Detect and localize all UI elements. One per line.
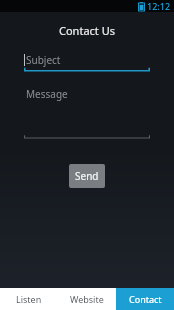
button[interactable]: Message (24, 86, 150, 139)
button[interactable]: Listen (0, 288, 58, 310)
staticText: Listen (16, 293, 42, 305)
button[interactable]: Website (58, 288, 116, 310)
staticText: Send (75, 169, 99, 183)
staticText: Subject (26, 53, 61, 67)
staticText: Website (70, 293, 104, 305)
button[interactable]: Send (69, 164, 105, 188)
staticText: 12:12 (147, 0, 171, 12)
button[interactable]: Contact (116, 288, 174, 310)
staticText: Contact (129, 293, 162, 305)
staticText: Message (26, 87, 68, 101)
staticText: Contact Us (0, 23, 174, 38)
button[interactable]: Subject (24, 53, 150, 72)
